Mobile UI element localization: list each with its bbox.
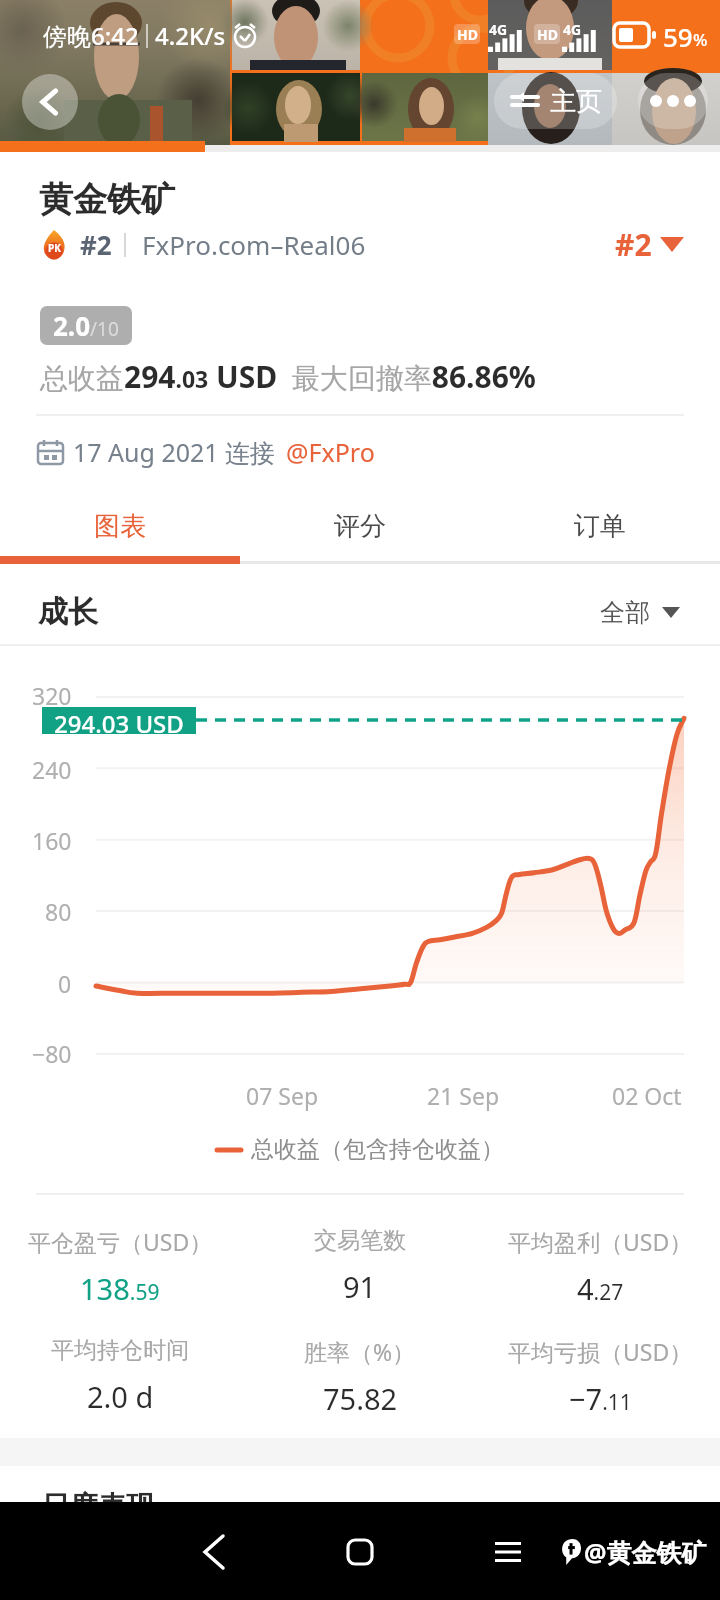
staticText: 胜率（%）: [304, 1336, 416, 1367]
staticText: 日度表现: [42, 1489, 154, 1524]
staticText: 交易笔数: [314, 1226, 406, 1255]
staticText: PK: [48, 241, 61, 255]
staticText: 59: [663, 19, 693, 54]
staticText: #2: [80, 227, 112, 262]
staticText: HD: [537, 25, 558, 44]
staticText: 4.2K/s: [155, 19, 226, 52]
staticText: 图表: [94, 510, 146, 543]
staticText: 4.27: [577, 1269, 624, 1308]
button[interactable]: 订单: [480, 495, 720, 557]
staticText: 平均亏损（USD）: [508, 1336, 693, 1367]
staticText: 订单: [574, 510, 626, 543]
staticText: @黄金铁矿: [584, 1535, 707, 1569]
staticText: HD: [457, 25, 478, 44]
staticText: 成长: [38, 593, 98, 631]
staticText: 平仓盈亏（USD）: [28, 1226, 213, 1257]
staticText: 总收益（包含持仓收益）: [251, 1135, 504, 1164]
button[interactable]: Recent apps: [478, 1522, 538, 1582]
staticText: 240: [32, 754, 72, 785]
staticText: 75.82: [323, 1379, 398, 1418]
staticText: 4G: [489, 20, 508, 39]
button[interactable]: @黄金铁矿: [560, 1522, 707, 1582]
staticText: 2.0 d: [87, 1377, 154, 1416]
button[interactable]: 全部: [600, 597, 682, 628]
button[interactable]: Back: [22, 74, 78, 130]
button[interactable]: More options: [638, 73, 708, 129]
staticText: 评分: [334, 510, 386, 543]
staticText: 主页: [550, 85, 602, 118]
staticText: FxPro.com–Real06: [142, 227, 366, 262]
staticText: %: [693, 28, 708, 51]
staticText: 160: [32, 825, 72, 856]
staticText: #2: [615, 224, 652, 265]
staticText: 0: [58, 968, 72, 999]
staticText: 294.03 USD: [54, 707, 184, 734]
staticText: 07 Sep: [246, 1080, 319, 1111]
staticText: 傍晚6:42: [43, 19, 139, 52]
button[interactable]: Back: [184, 1522, 244, 1582]
staticText: 4G: [563, 20, 582, 39]
staticText: 138.59: [80, 1269, 160, 1308]
staticText: 平均盈利（USD）: [508, 1226, 693, 1257]
staticText: 21 Sep: [427, 1080, 500, 1111]
staticText: 平均持仓时间: [51, 1336, 189, 1365]
staticText: 320: [32, 680, 72, 711]
staticText: −7.11: [569, 1379, 632, 1418]
staticText: −80: [32, 1038, 72, 1069]
staticText: 02 Oct: [612, 1080, 682, 1111]
button[interactable]: 图表: [0, 495, 240, 557]
button[interactable]: 评分: [240, 495, 480, 557]
button[interactable]: Home: [330, 1522, 390, 1582]
staticText: 黄金铁矿: [39, 178, 175, 221]
staticText: 2.0/10: [53, 308, 119, 343]
staticText: 17 Aug 2021 连接: [73, 435, 276, 469]
staticText: 91: [343, 1267, 377, 1306]
staticText: 全部: [600, 597, 650, 628]
button[interactable]: 主页: [494, 73, 617, 129]
staticText: @FxPro: [286, 435, 375, 469]
staticText: 总收益294.03 USD 最大回撤率86.86%: [40, 356, 536, 397]
staticText: 80: [45, 896, 72, 927]
